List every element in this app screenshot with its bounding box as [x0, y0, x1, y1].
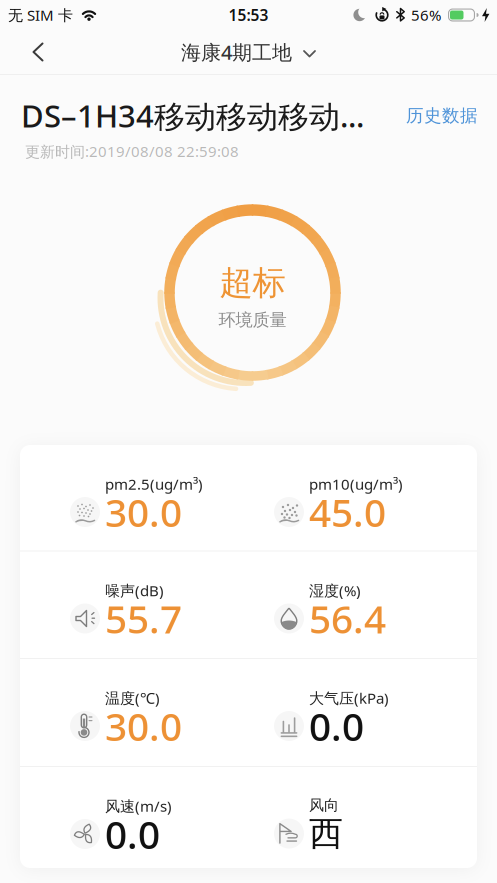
button[interactable]: 海康4期工地 [181, 39, 316, 65]
button[interactable]: Back [0, 42, 44, 61]
staticText: 历史数据 [406, 105, 478, 126]
staticText: DS–1H34移动移动移动... [21, 95, 364, 136]
staticText: 西 [309, 816, 343, 851]
staticText: 56% [411, 5, 441, 25]
staticText: 风向 [309, 796, 339, 814]
staticText: 超标 [219, 262, 285, 303]
staticText: pm2.5(ug/m³) [105, 474, 203, 494]
staticText: 0.0 [309, 705, 364, 747]
button[interactable]: 历史数据 [406, 105, 478, 126]
staticText: 15:53 [228, 5, 268, 25]
staticText: 温度(℃) [105, 688, 160, 708]
staticText: 56.4 [309, 597, 386, 640]
staticText: 湿度(%) [309, 580, 361, 600]
staticText: 30.0 [105, 705, 182, 747]
staticText: 无 SIM 卡 [8, 5, 73, 25]
staticText: 0.0 [105, 813, 160, 855]
staticText: pm10(ug/m³) [309, 474, 403, 494]
staticText: 45.0 [309, 491, 386, 533]
staticText: 海康4期工地 [181, 39, 292, 65]
staticText: 风速(m/s) [105, 796, 172, 816]
staticText: 30.0 [105, 491, 182, 533]
staticText: 55.7 [105, 597, 182, 640]
staticText: 环境质量 [218, 309, 286, 330]
staticText: 更新时间:2019/08/08 22:59:08 [25, 141, 239, 161]
staticText: 噪声(dB) [105, 580, 164, 600]
staticText: 大气压(kPa) [309, 688, 389, 708]
